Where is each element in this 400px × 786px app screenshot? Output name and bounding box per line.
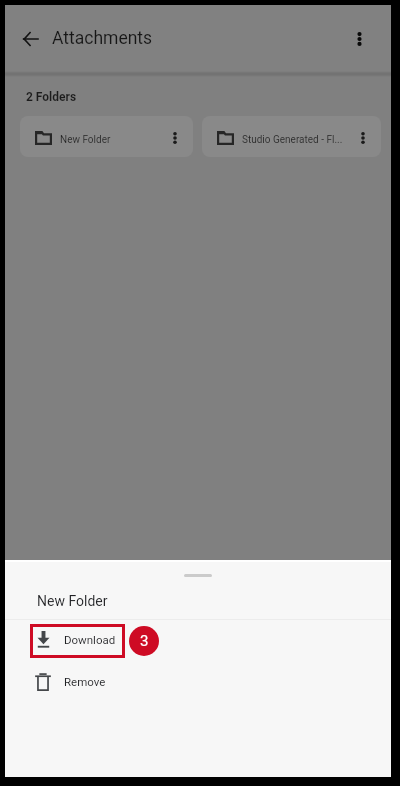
staticText: New Folder (37, 593, 108, 609)
button[interactable]: Navigate up (10, 19, 50, 59)
button[interactable]: New Folder (20, 116, 193, 157)
staticText: Studio Generated - Fl... (242, 134, 355, 146)
staticText: New Folder (60, 134, 167, 146)
button[interactable]: Studio Generated - Fl... (202, 116, 381, 157)
staticText: Remove (64, 675, 106, 688)
other: Folder options (173, 132, 177, 144)
button[interactable]: Download (5, 620, 391, 664)
staticText: 2 Folders (26, 90, 77, 104)
staticText: Download (64, 633, 116, 646)
other: Folder options (361, 132, 365, 144)
button[interactable]: More options (339, 19, 379, 59)
staticText: 3 (140, 632, 149, 650)
staticText: Attachments (52, 28, 153, 49)
button[interactable]: Remove (5, 664, 391, 706)
